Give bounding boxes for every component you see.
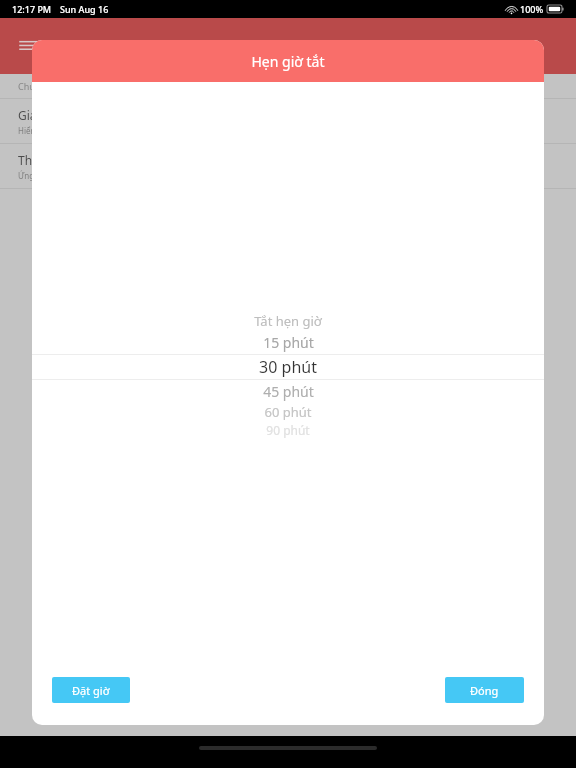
staticText: 100% (520, 3, 544, 15)
staticText: 30 phút (259, 356, 317, 378)
button[interactable]: Menu (14, 31, 44, 61)
staticText: Đặt giờ (72, 683, 110, 698)
staticText: 15 phút (263, 333, 314, 352)
staticText: 12:17 PM (12, 3, 52, 15)
button[interactable]: Đóng (445, 677, 524, 703)
staticText: Hẹn giờ tắt (251, 52, 325, 71)
staticText: Tắt hẹn giờ (254, 312, 322, 330)
staticText: 45 phút (263, 382, 314, 401)
staticText: Giao diện tối (18, 107, 90, 123)
staticText: Cài đặt (263, 36, 313, 56)
staticText: Thông báo (18, 152, 79, 168)
staticText: 90 phút (266, 422, 310, 438)
staticText: Chung (18, 80, 46, 92)
staticText: Ứng dụng gửi thông báo (18, 170, 112, 181)
button[interactable]: Đặt giờ (52, 677, 130, 703)
button[interactable]: Thông báo (0, 144, 576, 188)
button[interactable]: Giao diện tối (0, 99, 576, 143)
staticText: 60 phút (264, 403, 312, 421)
staticText: Hiển thị chủ đề tối (18, 125, 87, 136)
staticText: Sun Aug 16 (60, 3, 109, 15)
staticText: Đóng (470, 683, 499, 698)
